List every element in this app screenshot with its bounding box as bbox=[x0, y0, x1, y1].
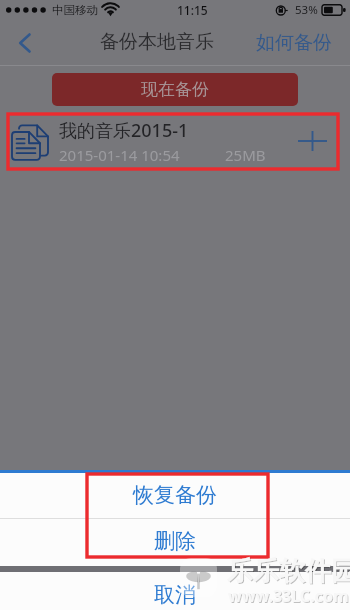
staticText: 备份本地音乐 bbox=[100, 30, 214, 54]
button[interactable]: 取消 bbox=[0, 572, 350, 610]
staticText: 取消 bbox=[154, 582, 196, 608]
staticText: 现在备份 bbox=[141, 79, 209, 100]
staticText: 乐乐软件园 bbox=[228, 556, 350, 589]
button[interactable]: 我的音乐2015-1 bbox=[0, 113, 350, 169]
button[interactable]: Add bbox=[295, 124, 329, 158]
button[interactable]: 如何备份 bbox=[252, 25, 336, 61]
staticText: 我的音乐2015-1 bbox=[59, 118, 189, 143]
staticText: 2015-01-14 10:54 bbox=[59, 145, 180, 165]
button[interactable]: Back bbox=[8, 26, 42, 60]
staticText: 删除 bbox=[154, 528, 196, 554]
staticText: 乐乐软件园 bbox=[227, 555, 350, 588]
staticText: 如何备份 bbox=[256, 31, 332, 55]
staticText: 中国移动 bbox=[52, 3, 98, 17]
button[interactable]: 恢复备份 bbox=[0, 473, 350, 518]
staticText: 恢复备份 bbox=[133, 482, 217, 508]
staticText: www.33LC.com bbox=[228, 585, 349, 607]
staticText: 53% bbox=[295, 2, 318, 18]
staticText: www.33LC.com bbox=[229, 586, 350, 608]
button[interactable]: 现在备份 bbox=[52, 73, 298, 106]
staticText: 25MB bbox=[225, 145, 266, 165]
staticText: 11:15 bbox=[177, 2, 208, 18]
button[interactable]: 删除 bbox=[0, 519, 350, 566]
